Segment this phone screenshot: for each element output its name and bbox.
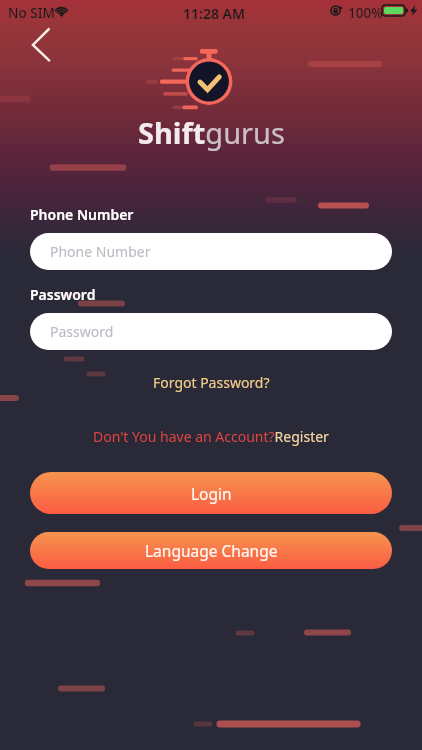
- button[interactable]: Phone Number: [30, 233, 392, 270]
- staticText: Phone Number: [50, 242, 151, 261]
- staticText: No SIM: [8, 4, 55, 22]
- button[interactable]: Login: [30, 472, 392, 514]
- staticText: Password: [30, 285, 96, 304]
- button[interactable]: Back: [22, 23, 62, 63]
- button[interactable]: Language Change: [30, 532, 392, 569]
- staticText: Language Change: [145, 540, 278, 561]
- button[interactable]: Password: [30, 313, 392, 350]
- staticText: Login: [191, 483, 232, 504]
- staticText: Password: [50, 322, 114, 341]
- button[interactable]: Don't You have an Account?Register: [85, 422, 337, 451]
- button[interactable]: Forgot Password?: [143, 368, 280, 397]
- staticText: Shiftgurus: [138, 113, 285, 152]
- staticText: Forgot Password?: [153, 373, 270, 392]
- staticText: 11:28 AM: [183, 4, 245, 23]
- staticText: Phone Number: [30, 205, 134, 224]
- staticText: Don't You have an Account?Register: [93, 427, 329, 446]
- staticText: 100%: [348, 4, 383, 22]
